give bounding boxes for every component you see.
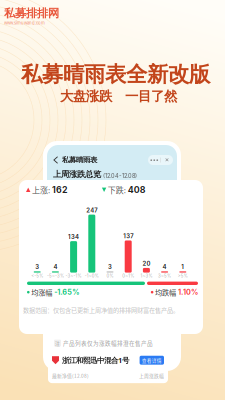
staticText: 408 xyxy=(128,184,146,195)
staticText: 4 xyxy=(53,263,57,270)
staticText: 3 xyxy=(35,263,39,270)
staticText: 产品列表仅为涨跌幅排澄在售产品 xyxy=(63,339,153,347)
staticText: 上周涨跌总览 xyxy=(53,169,101,179)
staticText: 上涨: xyxy=(32,184,52,196)
staticText: 最新净值(12.08) xyxy=(52,372,89,379)
staticText: 私募晴雨表 xyxy=(62,155,97,165)
staticText: 134 xyxy=(68,233,79,240)
staticText: 大盘涨跌 xyxy=(60,88,112,105)
staticText: -1.65% xyxy=(52,288,79,296)
staticText: 1~3% xyxy=(140,273,152,279)
staticText: 均跌幅 xyxy=(155,287,176,297)
staticText: 247 xyxy=(86,207,97,214)
staticText: (12.04-12.08) xyxy=(103,173,137,179)
staticText: 一目了然 xyxy=(125,88,177,105)
staticText: -1~0% xyxy=(85,273,99,279)
staticText: 0~1% xyxy=(122,273,134,279)
staticText: 均涨幅 xyxy=(31,287,52,297)
staticText: 私募排排网 xyxy=(4,6,59,20)
staticText: -5~-3% xyxy=(47,273,64,279)
staticText: 数据范围：仅包含已更新上周净值的排排网财富在售产品。 xyxy=(23,305,179,314)
staticText: 1.10% xyxy=(176,288,198,296)
staticText: www.simuwang.com xyxy=(4,20,45,25)
staticText: 下跌: xyxy=(108,184,128,196)
staticText: 私募晴雨表全新改版 xyxy=(21,61,210,88)
staticText: 20 xyxy=(142,260,150,267)
staticText: 1 xyxy=(181,263,184,270)
staticText: 4 xyxy=(163,263,167,270)
staticText: 上周涨跌幅 xyxy=(139,372,164,379)
staticText: 浙江和熙迅中混合1号 xyxy=(62,355,129,365)
staticText: 137 xyxy=(123,233,133,240)
staticText: <-5% xyxy=(31,273,43,279)
staticText: 注 xyxy=(55,340,60,347)
staticText: 3~5% xyxy=(158,273,171,279)
staticText: 3 xyxy=(108,263,112,270)
staticText: 查看详情 xyxy=(142,357,162,364)
staticText: ✕ xyxy=(165,157,169,163)
staticText: -3~-1% xyxy=(66,273,82,279)
staticText: >5% xyxy=(178,273,188,279)
staticText: 162 xyxy=(52,184,68,195)
staticText: 0% xyxy=(106,273,113,279)
staticText: ••• xyxy=(150,157,159,163)
